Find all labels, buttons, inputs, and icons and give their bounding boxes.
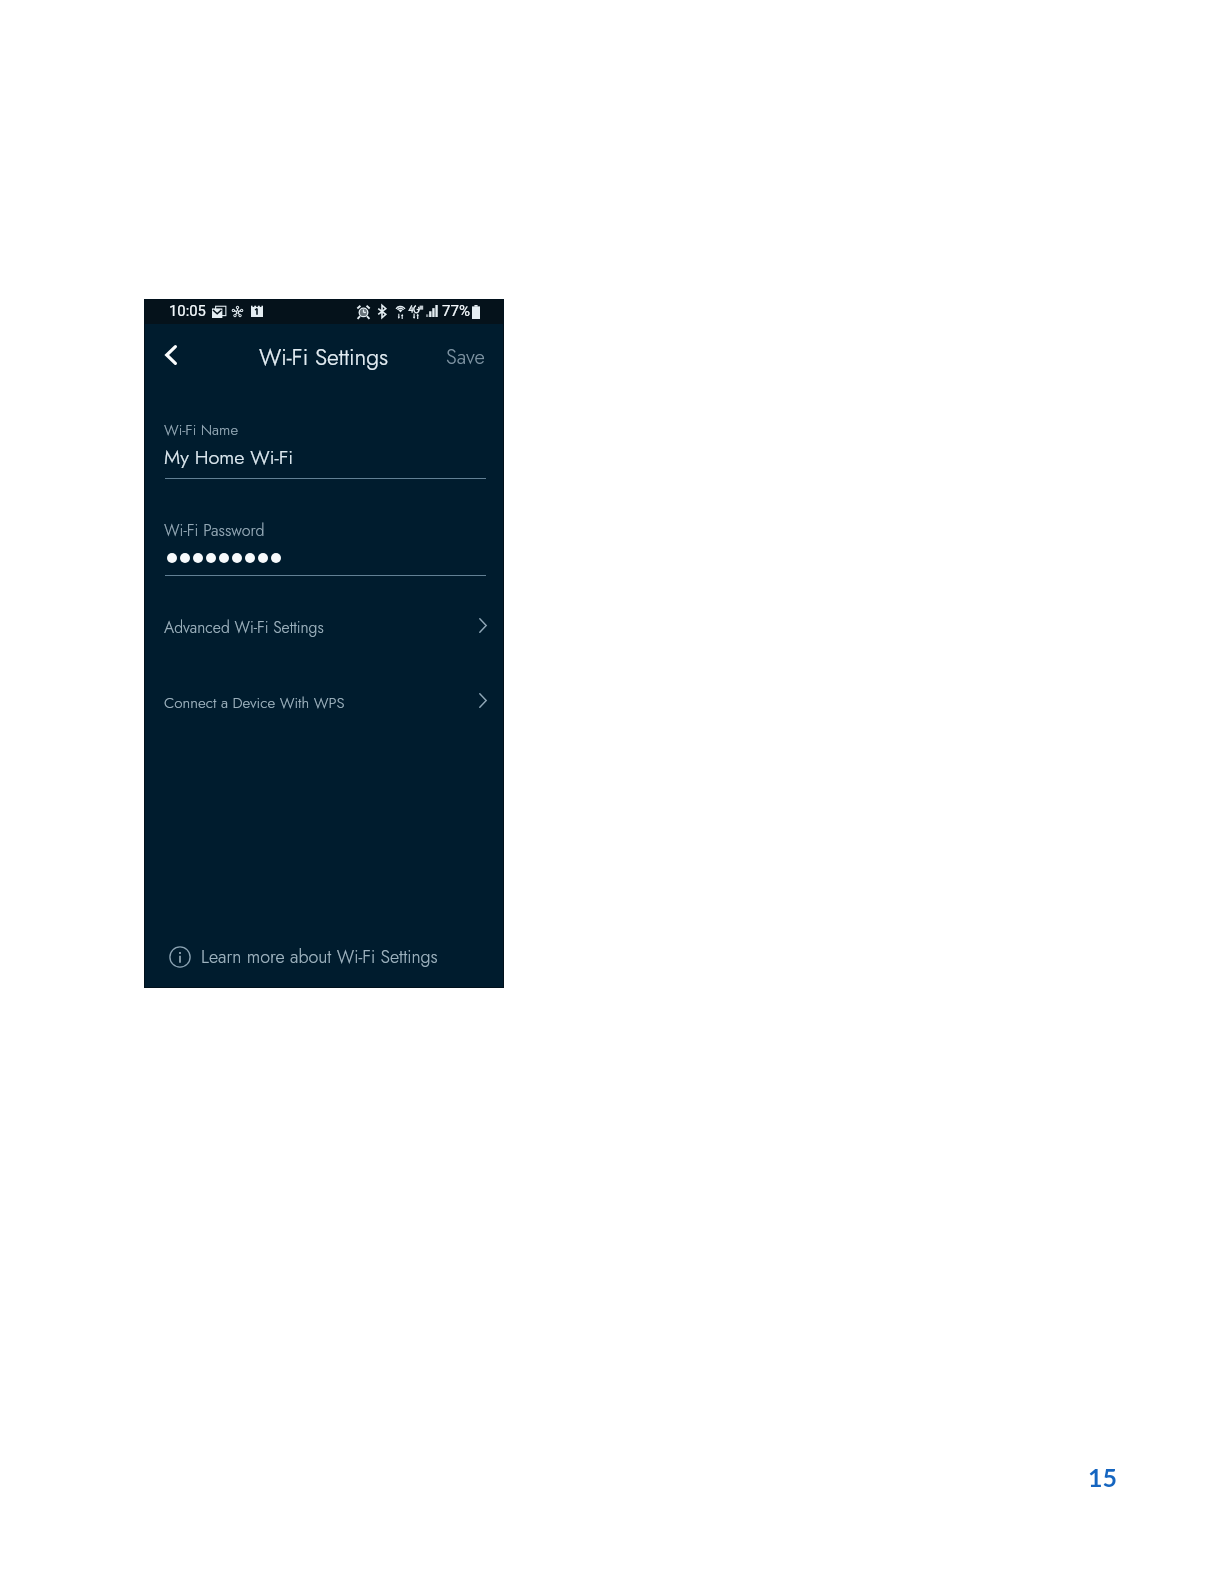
- staticText: Save: [446, 342, 485, 371]
- staticText: 15: [1088, 1462, 1118, 1492]
- staticText: Learn more about Wi-Fi Settings: [201, 944, 438, 970]
- staticText: Wi-Fi Settings: [259, 341, 389, 374]
- staticText: Wi-Fi Password: [164, 519, 265, 542]
- button[interactable]: Advanced Wi-Fi Settings: [144, 612, 504, 642]
- staticText: Advanced Wi-Fi Settings: [164, 616, 324, 639]
- staticText: My Home Wi-Fi: [164, 443, 294, 472]
- button[interactable]: Back: [154, 337, 188, 373]
- staticText: 77%: [442, 302, 471, 320]
- button[interactable]: Learn more about Wi-Fi Settings: [144, 942, 504, 972]
- staticText: Wi-Fi Name: [164, 419, 239, 441]
- button[interactable]: Connect a Device With WPS: [144, 688, 504, 718]
- staticText: 10:05: [169, 302, 206, 319]
- button[interactable]: Save: [440, 337, 491, 376]
- staticText: Connect a Device With WPS: [164, 692, 345, 714]
